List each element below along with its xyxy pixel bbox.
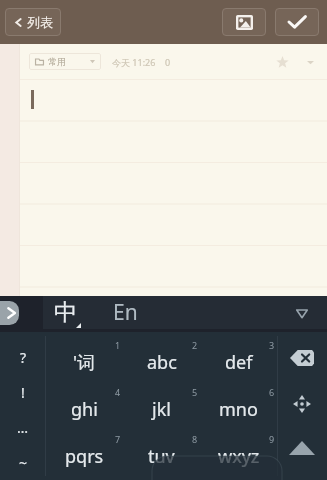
button[interactable]: Done <box>275 8 319 36</box>
button[interactable]: 2 <box>123 332 200 379</box>
button[interactable]: 列表 <box>5 8 61 36</box>
staticText: mno <box>219 397 258 422</box>
staticText: def <box>225 350 253 375</box>
staticText: 常用 <box>48 56 66 67</box>
button[interactable]: 7 <box>46 426 123 473</box>
button[interactable]: Backspace <box>277 332 327 379</box>
staticText: tuv <box>148 444 175 469</box>
button[interactable]: 6 <box>200 379 277 426</box>
staticText: 列表 <box>27 14 53 30</box>
staticText: 3 <box>269 339 275 351</box>
staticText: 6 <box>269 386 275 398</box>
staticText: 5 <box>192 386 198 398</box>
staticText: '词 <box>73 350 96 375</box>
staticText: 中 <box>54 298 77 327</box>
button[interactable]: Insert image <box>222 8 266 36</box>
button[interactable]: ? <box>0 340 46 375</box>
button[interactable]: ! <box>0 375 46 410</box>
staticText: pqrs <box>65 444 104 469</box>
staticText: abc <box>147 350 177 375</box>
staticText: jkl <box>152 397 171 422</box>
staticText: ! <box>21 383 25 402</box>
staticText: 7 <box>115 433 121 445</box>
button[interactable]: Expand panel <box>0 301 19 325</box>
button[interactable]: En <box>94 296 156 329</box>
staticText: ~ <box>19 453 28 472</box>
staticText: 8 <box>192 433 198 445</box>
button[interactable]: Star <box>269 49 295 75</box>
staticText: … <box>17 418 29 437</box>
staticText: 0 <box>165 56 171 68</box>
staticText: 1 <box>115 339 121 351</box>
staticText: En <box>113 298 138 327</box>
button[interactable]: 1 <box>46 332 123 379</box>
button[interactable]: More options <box>301 53 319 71</box>
staticText: ? <box>20 348 27 367</box>
button[interactable]: 8 <box>123 426 200 473</box>
staticText: 今天 11:26 <box>112 56 156 68</box>
staticText: 4 <box>115 386 121 398</box>
button[interactable]: 3 <box>200 332 277 379</box>
staticText: wxyz <box>218 444 260 469</box>
staticText: ghi <box>71 397 98 422</box>
staticText: 2 <box>192 339 198 351</box>
button[interactable]: ~ <box>0 445 46 480</box>
button[interactable]: Enter <box>277 426 327 480</box>
button[interactable]: 中 <box>43 296 94 329</box>
button[interactable]: 9 <box>200 426 277 473</box>
button[interactable]: Move cursor <box>277 379 327 426</box>
button[interactable]: 5 <box>123 379 200 426</box>
button[interactable]: 4 <box>46 379 123 426</box>
button[interactable]: Hide keyboard <box>289 300 315 326</box>
button[interactable]: 常用 <box>29 53 101 70</box>
button[interactable]: … <box>0 410 46 445</box>
staticText: 9 <box>269 433 275 445</box>
